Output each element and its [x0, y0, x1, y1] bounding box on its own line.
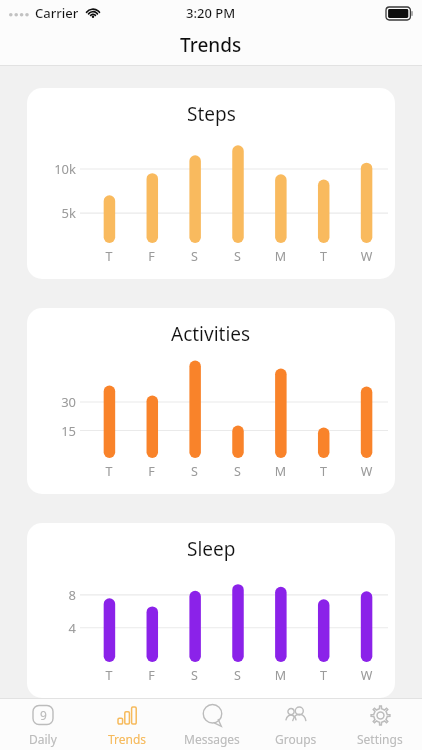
staticText: Steps [187, 101, 236, 127]
staticText: W [345, 667, 388, 684]
staticText: 9 [40, 707, 47, 723]
staticText: Sleep [187, 536, 236, 562]
staticText: T [302, 248, 345, 265]
staticText: S [216, 667, 259, 684]
staticText: F [130, 248, 173, 265]
staticText: Groups [275, 731, 317, 747]
button[interactable]: Daily [0, 699, 85, 750]
staticText: 8 [27, 586, 76, 604]
button[interactable]: Groups [254, 699, 338, 750]
staticText: W [345, 463, 388, 480]
staticText: M [259, 667, 302, 684]
staticText: S [216, 463, 259, 480]
button[interactable]: Steps [27, 88, 395, 279]
button[interactable]: Trends [85, 699, 170, 750]
staticText: Messages [184, 731, 240, 747]
staticText: F [130, 463, 173, 480]
staticText: Activities [171, 321, 251, 347]
staticText: 15 [27, 422, 76, 440]
staticText: 30 [27, 393, 76, 411]
staticText: T [302, 667, 345, 684]
staticText: S [173, 248, 216, 265]
staticText: F [130, 667, 173, 684]
staticText: S [216, 248, 259, 265]
staticText: Daily [29, 731, 57, 747]
staticText: T [88, 463, 130, 480]
staticText: Settings [357, 731, 403, 747]
staticText: S [173, 463, 216, 480]
staticText: M [259, 248, 302, 265]
staticText: Trends [108, 731, 147, 747]
staticText: 3:20 PM [186, 4, 236, 22]
button[interactable]: Settings [338, 699, 422, 750]
staticText: T [88, 248, 130, 265]
button[interactable]: Activities [27, 308, 395, 494]
staticText: 4 [27, 619, 76, 637]
staticText: T [302, 463, 345, 480]
staticText: T [88, 667, 130, 684]
staticText: 10k [27, 160, 76, 178]
staticText: Carrier [35, 4, 79, 22]
button[interactable]: Sleep [27, 523, 395, 698]
staticText: 5k [27, 204, 76, 222]
staticText: W [345, 248, 388, 265]
staticText: Trends [180, 32, 242, 58]
staticText: S [173, 667, 216, 684]
button[interactable]: Messages [170, 699, 254, 750]
staticText: M [259, 463, 302, 480]
